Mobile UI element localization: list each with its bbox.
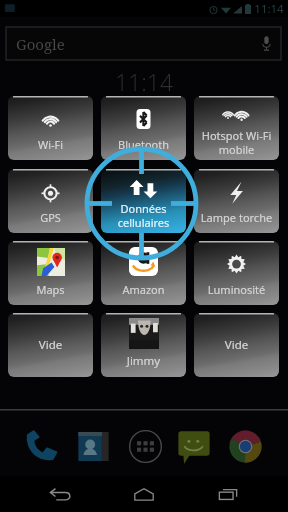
button[interactable]: Chrome bbox=[226, 427, 265, 466]
staticText: Vide bbox=[8, 337, 93, 353]
button[interactable]: Phone bbox=[22, 427, 61, 466]
staticText: Hotspot Wi-Fi mobile bbox=[194, 128, 279, 157]
button[interactable]: Vide bbox=[194, 313, 279, 377]
button[interactable]: Maps bbox=[8, 241, 93, 305]
button[interactable]: Jimmy bbox=[101, 313, 186, 377]
staticText: 11:14 bbox=[0, 66, 288, 97]
button[interactable]: Home bbox=[120, 477, 168, 511]
staticText: Luminosité bbox=[194, 282, 279, 297]
staticText: Amazon bbox=[101, 282, 186, 297]
staticText: Bluetooth bbox=[101, 137, 186, 152]
button[interactable]: Back bbox=[36, 477, 84, 511]
staticText: 11:14 bbox=[254, 1, 284, 17]
button[interactable]: Luminosité bbox=[194, 241, 279, 305]
staticText: Google bbox=[16, 34, 65, 54]
button[interactable]: Bluetooth bbox=[101, 96, 186, 160]
staticText: Vide bbox=[194, 337, 279, 353]
button[interactable]: Hotspot Wi-Fi mobile bbox=[194, 96, 279, 160]
staticText: Données cellulaires bbox=[101, 201, 186, 230]
staticText: GPS bbox=[8, 210, 93, 225]
button[interactable]: Google bbox=[6, 27, 281, 60]
staticText: Wi-Fi bbox=[8, 137, 93, 152]
button[interactable]: Contacts bbox=[74, 427, 113, 466]
button[interactable]: Amazon bbox=[101, 241, 186, 305]
button[interactable]: Apps bbox=[126, 427, 165, 466]
button[interactable]: GPS bbox=[8, 169, 93, 233]
button[interactable]: Messaging bbox=[174, 427, 214, 467]
button[interactable]: Données cellulaires bbox=[101, 169, 186, 233]
staticText: Lampe torche bbox=[194, 210, 279, 225]
button[interactable]: Vide bbox=[8, 313, 93, 377]
button[interactable]: Recent apps bbox=[204, 477, 252, 511]
button[interactable]: Wi-Fi bbox=[8, 96, 93, 160]
button[interactable]: Lampe torche bbox=[194, 169, 279, 233]
staticText: Jimmy bbox=[101, 353, 186, 369]
staticText: Maps bbox=[8, 282, 93, 297]
button[interactable]: Voice search bbox=[251, 28, 281, 59]
